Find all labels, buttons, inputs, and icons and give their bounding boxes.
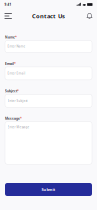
staticText: Email — [5, 61, 14, 66]
staticText: Enter Subject — [8, 99, 28, 103]
staticText: * — [17, 89, 19, 93]
staticText: Enter Name — [8, 44, 26, 48]
staticText: Message — [5, 116, 20, 121]
staticText: * — [15, 35, 17, 39]
staticText: Name — [5, 35, 15, 39]
staticText: Subject — [5, 89, 17, 93]
staticText: Contact Us — [32, 12, 65, 20]
button[interactable]: Submit — [5, 183, 92, 196]
staticText: * — [14, 61, 16, 66]
staticText: 9:41 — [4, 2, 11, 6]
staticText: Submit — [41, 187, 55, 192]
button[interactable]: Notifications — [80, 10, 92, 22]
staticText: * — [20, 116, 22, 121]
staticText: Enter Email — [8, 71, 26, 75]
button[interactable]: Menu — [4, 10, 16, 22]
staticText: Enter Message — [8, 125, 30, 129]
